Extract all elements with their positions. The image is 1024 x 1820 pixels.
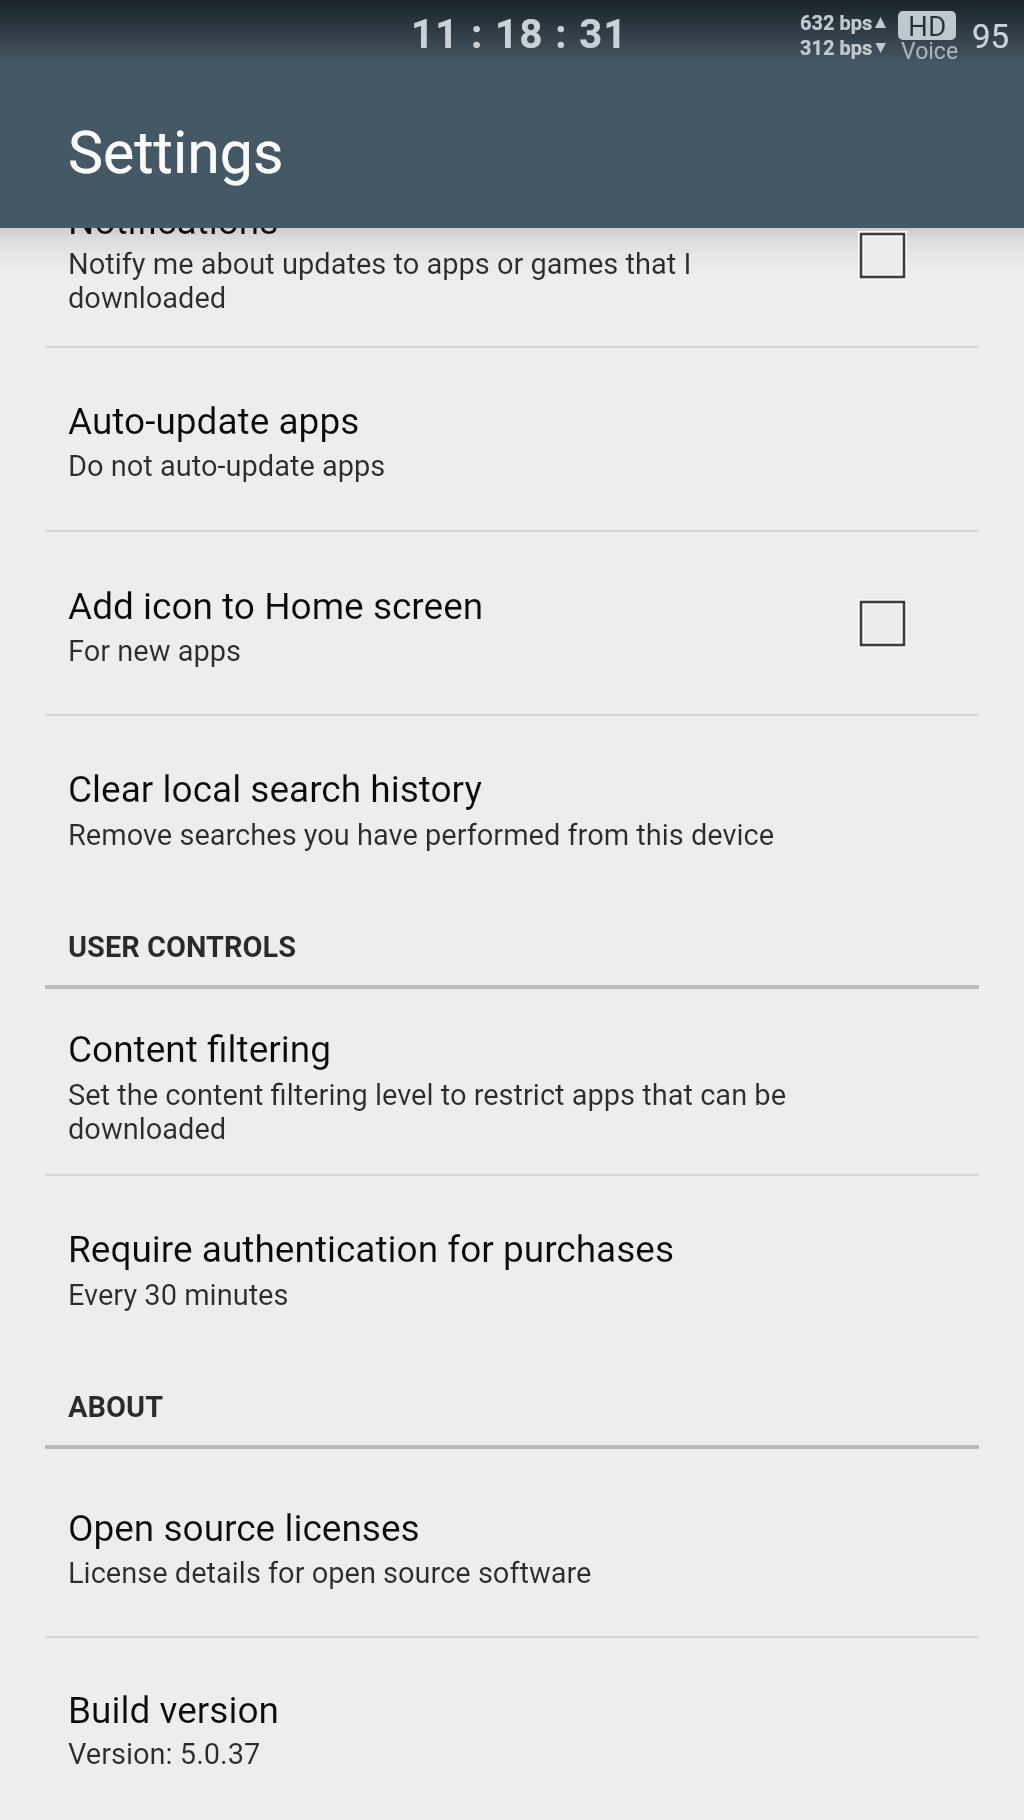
button[interactable]: Add icon to Home screen — [0, 532, 1024, 715]
button[interactable]: Toggle setting — [858, 231, 907, 280]
staticText: Content filtering — [68, 1028, 332, 1071]
staticText: Notify me about updates to apps or games… — [68, 247, 728, 315]
staticText: HD — [908, 11, 947, 39]
staticText: Set the content filtering level to restr… — [68, 1078, 858, 1146]
staticText: Version: 5.0.37 — [68, 1737, 261, 1771]
staticText: USER CONTROLS — [68, 930, 297, 964]
staticText: 312 bps — [800, 36, 873, 59]
staticText: 95 — [972, 17, 1010, 56]
button[interactable]: Require authentication for purchases — [0, 1176, 1024, 1360]
staticText: Notifications — [68, 200, 279, 243]
staticText: Settings — [68, 118, 284, 187]
staticText: Voice — [901, 38, 959, 65]
button[interactable]: Clear local search history — [0, 716, 1024, 900]
staticText: License details for open source software — [68, 1556, 592, 1590]
staticText: Require authentication for purchases — [68, 1228, 675, 1271]
staticText: Add icon to Home screen — [68, 585, 484, 628]
staticText: Open source licenses — [68, 1507, 420, 1550]
staticText: Clear local search history — [68, 768, 482, 811]
button[interactable]: Toggle setting — [858, 599, 907, 648]
staticText: 11 : 18 : 31 — [411, 11, 628, 58]
other: HD Voice — [898, 11, 956, 40]
staticText: For new apps — [68, 634, 241, 668]
staticText: Auto-update apps — [68, 400, 360, 443]
staticText: 632 bps — [800, 11, 873, 34]
staticText: Remove searches you have performed from … — [68, 818, 775, 852]
staticText: ABOUT — [68, 1390, 164, 1424]
button[interactable]: Build version — [0, 1638, 1024, 1820]
button[interactable]: Notifications — [0, 0, 1024, 347]
staticText: Build version — [68, 1689, 279, 1732]
button[interactable]: Auto-update apps — [0, 348, 1024, 531]
button[interactable]: Open source licenses — [0, 1450, 1024, 1637]
button[interactable]: Content filtering — [0, 990, 1024, 1175]
staticText: Do not auto-update apps — [68, 449, 386, 483]
other: Network throughput — [875, 16, 888, 56]
staticText: Every 30 minutes — [68, 1278, 289, 1312]
